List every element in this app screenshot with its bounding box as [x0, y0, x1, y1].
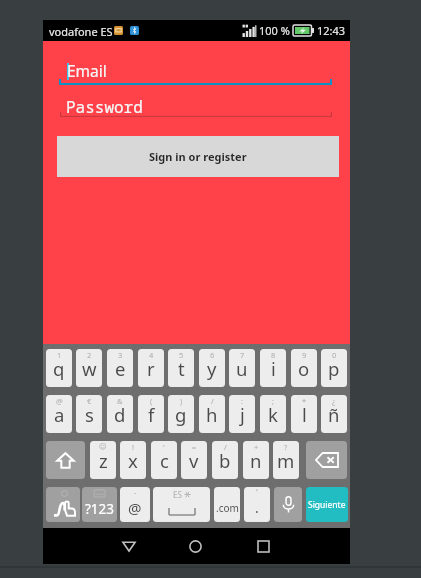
- button[interactable]: *: [291, 395, 317, 433]
- staticText: €: [87, 396, 92, 406]
- button[interactable]: ☺: [90, 441, 116, 479]
- button[interactable]: Password: [60, 91, 332, 117]
- staticText: ): [180, 396, 183, 406]
- button[interactable]: Sign in or register: [57, 136, 339, 177]
- staticText: Sign in or register: [149, 149, 247, 164]
- staticText: r: [147, 356, 155, 381]
- staticText: ': [256, 487, 258, 498]
- staticText: &: [117, 396, 123, 406]
- staticText: Password: [66, 96, 143, 118]
- button[interactable]: Emoji: [46, 487, 80, 522]
- button[interactable]: 6: [199, 349, 225, 387]
- button[interactable]: !: [120, 441, 146, 479]
- staticText: i: [271, 356, 276, 381]
- button[interactable]: Backspace: [306, 441, 347, 479]
- button[interactable]: Space: [153, 487, 210, 522]
- button[interactable]: &: [107, 395, 133, 433]
- staticText: x: [128, 448, 138, 473]
- button[interactable]: €: [76, 395, 102, 433]
- staticText: o: [298, 356, 310, 381]
- button[interactable]: Back: [113, 528, 145, 564]
- button[interactable]: (: [138, 395, 164, 433]
- staticText: 8: [271, 350, 276, 360]
- button[interactable]: ': [151, 441, 177, 479]
- button[interactable]: 2: [76, 349, 102, 387]
- button[interactable]: Voice input: [274, 487, 302, 522]
- staticText: c: [160, 448, 169, 473]
- staticText: 0: [332, 350, 337, 360]
- staticText: ?: [284, 442, 288, 452]
- staticText: !: [132, 442, 135, 452]
- staticText: v: [189, 448, 199, 473]
- button[interactable]: 5: [168, 349, 194, 387]
- staticText: y: [207, 356, 217, 381]
- staticText: 6: [210, 350, 215, 360]
- staticText: u: [236, 356, 248, 381]
- staticText: (: [150, 396, 153, 406]
- staticText: 9: [302, 350, 307, 360]
- button[interactable]: ): [168, 395, 194, 433]
- staticText: q: [53, 356, 65, 381]
- staticText: d: [114, 402, 126, 427]
- button[interactable]: 9: [291, 349, 317, 387]
- button[interactable]: ?123: [82, 487, 117, 522]
- staticText: Siguiente: [308, 499, 346, 511]
- button[interactable]: ¿: [321, 395, 347, 433]
- button[interactable]: +: [243, 441, 269, 479]
- button[interactable]: ;: [260, 395, 286, 433]
- staticText: ¿: [332, 396, 336, 406]
- staticText: 100 %: [259, 23, 290, 38]
- staticText: k: [268, 402, 278, 427]
- staticText: .com: [216, 501, 239, 515]
- staticText: ?123: [85, 500, 115, 518]
- staticText: @: [128, 498, 142, 518]
- button[interactable]: 7: [229, 349, 255, 387]
- button[interactable]: .com: [214, 487, 240, 522]
- button[interactable]: /: [212, 441, 238, 479]
- staticText: 5: [179, 350, 184, 360]
- staticText: ;: [272, 396, 275, 406]
- staticText: g: [175, 402, 187, 427]
- staticText: w: [82, 356, 97, 381]
- staticText: t: [178, 356, 185, 381]
- button[interactable]: :: [229, 395, 255, 433]
- staticText: vodafone ES: [49, 24, 113, 39]
- staticText: ': [163, 442, 165, 452]
- staticText: +: [254, 442, 259, 452]
- staticText: 12:43: [317, 23, 346, 38]
- staticText: 2: [87, 350, 92, 360]
- staticText: @: [56, 396, 63, 406]
- staticText: Email: [67, 60, 107, 81]
- staticText: b: [219, 448, 231, 473]
- button[interactable]: 4: [138, 349, 164, 387]
- button[interactable]: 1: [46, 349, 72, 387]
- button[interactable]: Recents: [247, 528, 279, 564]
- button[interactable]: =: [181, 441, 207, 479]
- button[interactable]: 8: [260, 349, 286, 387]
- staticText: e: [115, 356, 126, 381]
- staticText: s: [85, 402, 94, 427]
- staticText: :: [241, 396, 244, 406]
- button[interactable]: Shift: [46, 441, 85, 479]
- button[interactable]: Email: [59, 56, 332, 85]
- staticText: *: [302, 396, 307, 406]
- button[interactable]: @: [46, 395, 72, 433]
- button[interactable]: 0: [321, 349, 347, 387]
- button[interactable]: Siguiente: [306, 487, 348, 522]
- staticText: j: [240, 402, 245, 427]
- button[interactable]: Home: [179, 528, 211, 564]
- staticText: z: [99, 448, 108, 473]
- staticText: l: [302, 402, 307, 427]
- button[interactable]: /: [199, 395, 225, 433]
- button[interactable]: -: [120, 487, 150, 522]
- button[interactable]: ?: [273, 441, 299, 479]
- staticText: ES: [173, 489, 182, 500]
- button[interactable]: ': [244, 487, 270, 522]
- button[interactable]: 3: [107, 349, 133, 387]
- staticText: /: [224, 442, 227, 452]
- staticText: p: [328, 356, 340, 381]
- staticText: ☺: [99, 442, 107, 451]
- staticText: a: [54, 402, 65, 427]
- staticText: -: [134, 488, 137, 498]
- staticText: 3: [118, 350, 123, 360]
